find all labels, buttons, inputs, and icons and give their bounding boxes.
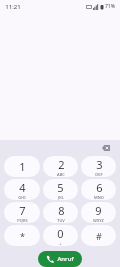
button[interactable]: 0 (43, 225, 78, 246)
button[interactable]: 9 (81, 202, 116, 223)
button[interactable]: 8 (43, 202, 78, 223)
staticText: WXYZ (93, 218, 104, 223)
staticText: 3 (96, 157, 103, 172)
staticText: 0 (57, 226, 64, 241)
staticText: 9 (95, 203, 102, 218)
staticText: 2 (58, 157, 65, 172)
staticText: * (20, 230, 25, 242)
button[interactable]: 5 (43, 179, 78, 200)
staticText: PQRS (17, 218, 28, 223)
button[interactable]: Backspace (100, 142, 112, 154)
staticText: 71% (105, 3, 115, 10)
staticText: # (96, 230, 102, 242)
button[interactable]: # (81, 225, 116, 246)
staticText: JKL (58, 195, 64, 200)
staticText: TUV (57, 218, 65, 223)
staticText: + (59, 241, 62, 246)
button[interactable]: * (4, 225, 40, 246)
staticText: 8 (58, 203, 65, 218)
button[interactable]: Anruf (38, 251, 82, 267)
staticText: 11:21 (5, 3, 21, 11)
button[interactable]: 7 (4, 202, 40, 223)
staticText: 6 (96, 180, 103, 195)
staticText: Anruf (57, 255, 74, 263)
staticText: MNO (94, 195, 104, 200)
button[interactable]: 3 (81, 156, 116, 177)
staticText: 4 (19, 180, 26, 195)
staticText: DEF (95, 172, 103, 177)
button[interactable]: 1 (4, 156, 40, 177)
staticText: 1 (19, 159, 26, 174)
button[interactable]: 2 (43, 156, 78, 177)
staticText: GHI (18, 195, 26, 200)
button[interactable]: 6 (81, 179, 116, 200)
staticText: 7 (19, 203, 26, 218)
staticText: 5 (57, 180, 64, 195)
button[interactable]: 4 (4, 179, 40, 200)
staticText: ABC (57, 172, 65, 177)
